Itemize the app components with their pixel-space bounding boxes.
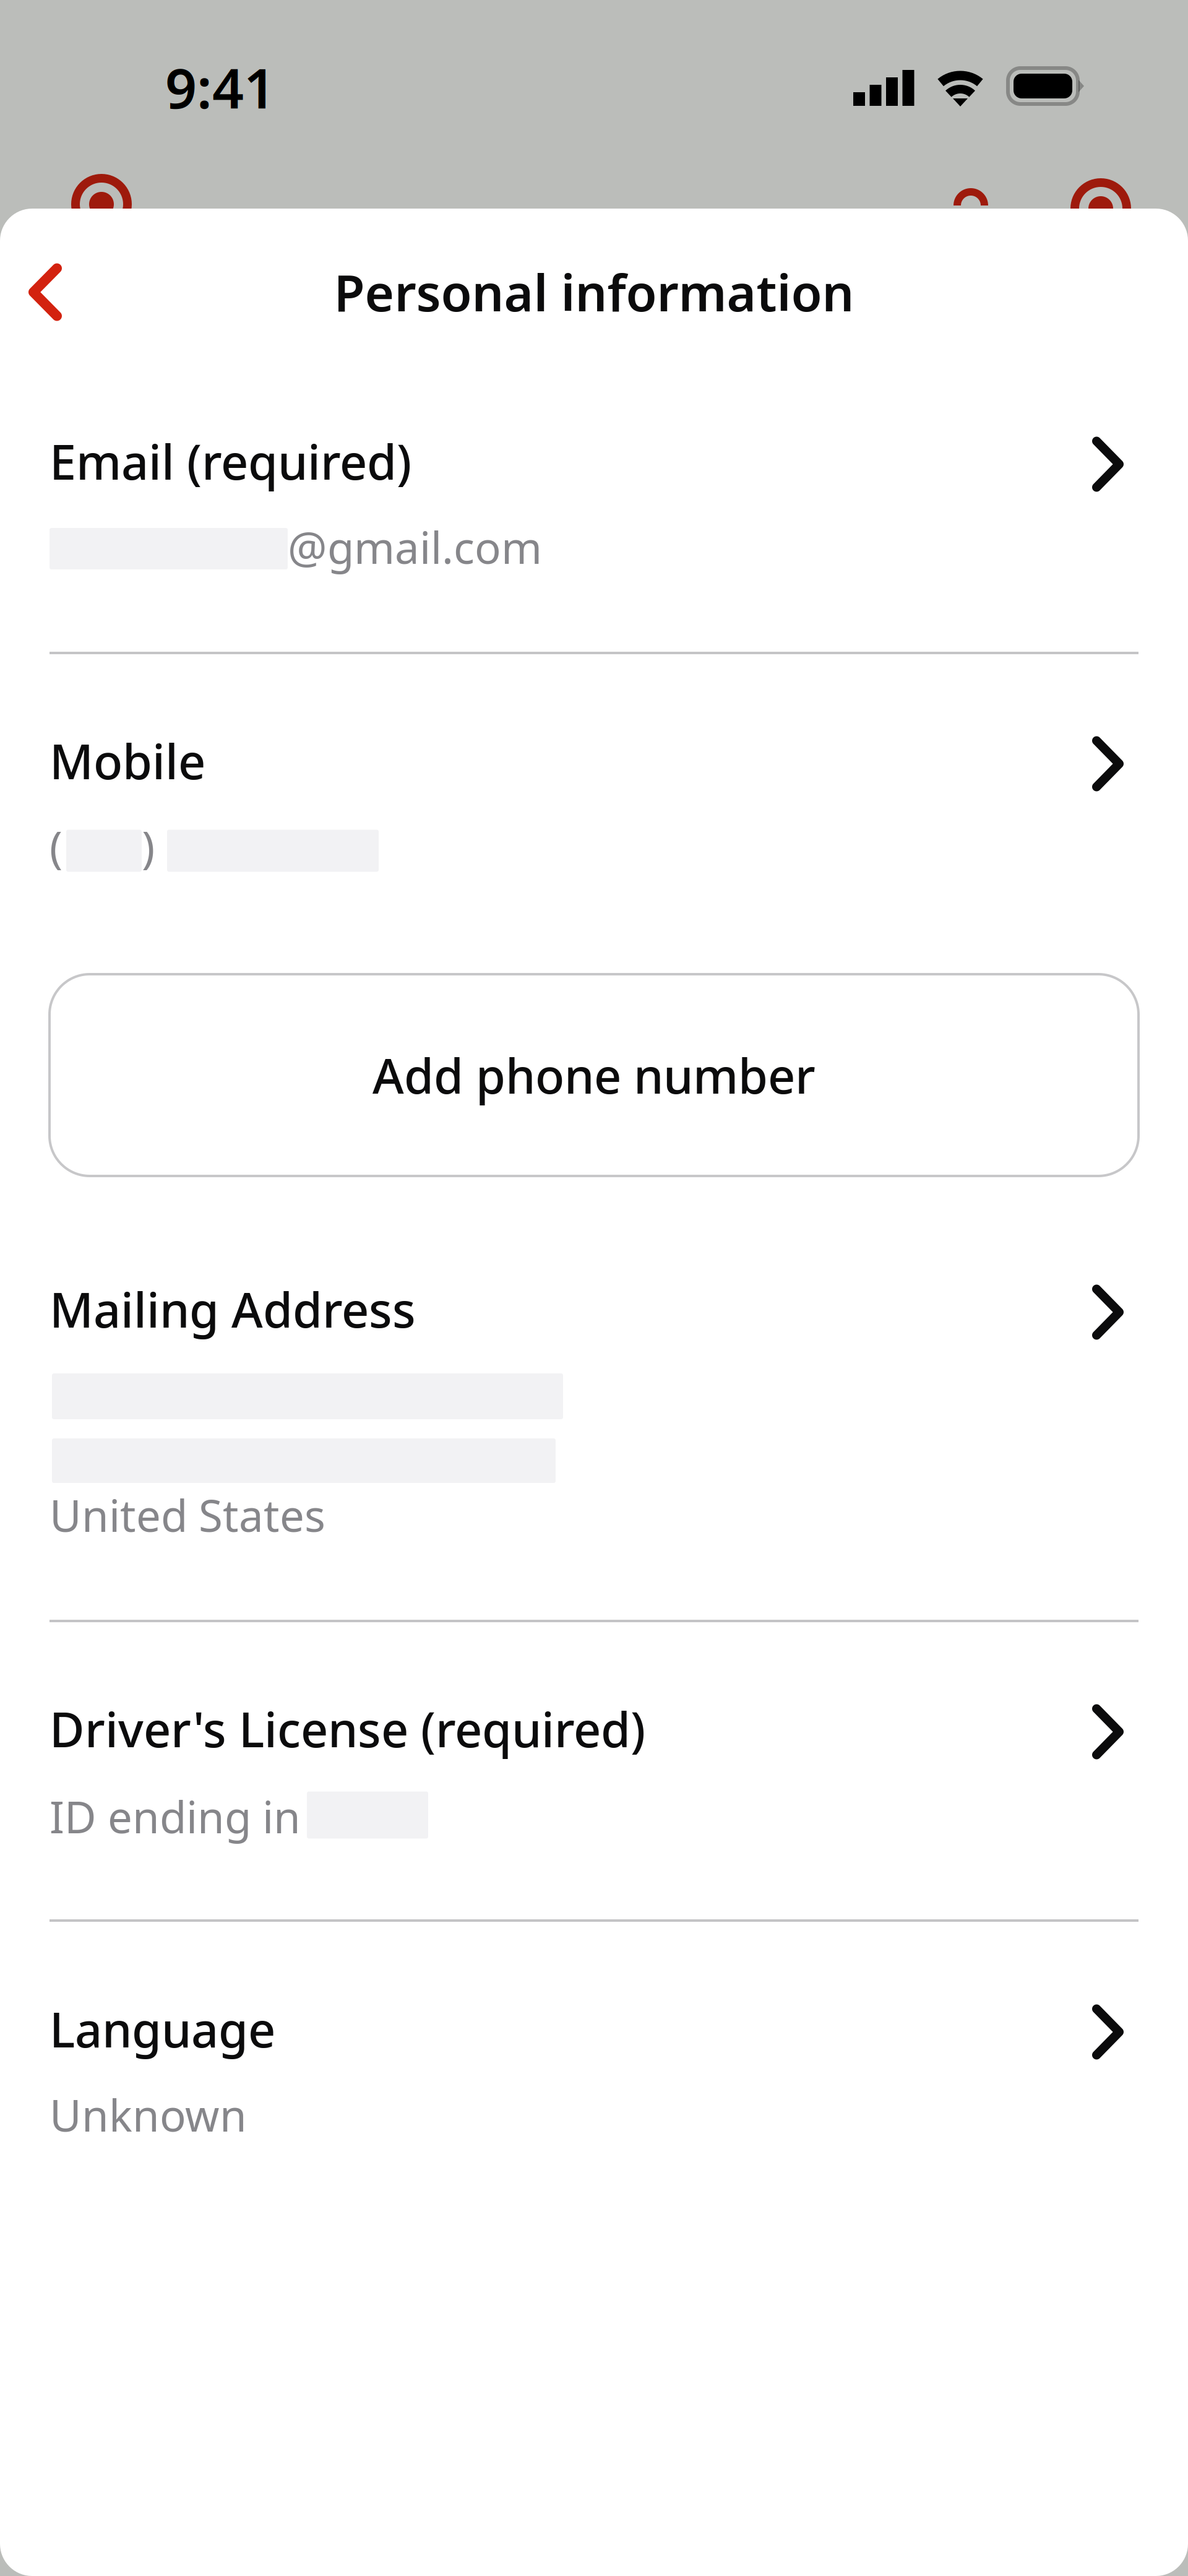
button[interactable]: Email (required) bbox=[0, 430, 1188, 576]
staticText: United States bbox=[49, 1486, 325, 1544]
button[interactable]: Mailing Address bbox=[0, 1277, 1188, 1544]
staticText: Mailing Address bbox=[49, 1277, 416, 1341]
staticText: 9:41 bbox=[165, 50, 275, 124]
staticText: ) bbox=[142, 817, 155, 875]
staticText: ( bbox=[49, 817, 62, 875]
staticText: Language bbox=[49, 1997, 275, 2061]
staticText: Driver's License (required) bbox=[49, 1697, 645, 1760]
button[interactable]: Driver's License (required) bbox=[0, 1697, 1188, 1845]
staticText: ID ending in bbox=[49, 1787, 301, 1845]
staticText: @gmail.com bbox=[288, 518, 542, 576]
button[interactable]: Back bbox=[0, 235, 92, 350]
staticText: Add phone number bbox=[372, 1043, 816, 1107]
staticText: Personal information bbox=[334, 258, 854, 325]
staticText: Email (required) bbox=[49, 429, 411, 493]
button[interactable]: Add phone number bbox=[0, 974, 1188, 1176]
staticText: Mobile bbox=[49, 729, 205, 792]
button[interactable]: Mobile bbox=[0, 729, 1188, 875]
staticText: Unknown bbox=[49, 2086, 247, 2144]
button[interactable]: Language bbox=[0, 1997, 1188, 2143]
